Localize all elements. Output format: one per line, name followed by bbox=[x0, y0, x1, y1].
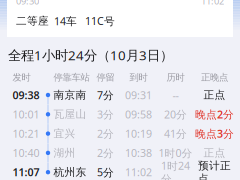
staticText: 正点 bbox=[203, 88, 225, 101]
staticText: 正晚点 bbox=[201, 72, 228, 83]
staticText: 20分 bbox=[164, 107, 187, 121]
staticText: 1时0分 bbox=[158, 146, 192, 160]
staticText: 预计正点 bbox=[198, 159, 231, 180]
staticText: 发时 bbox=[12, 72, 30, 83]
staticText: 杭州东 bbox=[53, 166, 86, 179]
staticText: 停留 bbox=[96, 72, 114, 83]
staticText: 14车 bbox=[54, 14, 77, 28]
staticText: 10:21 bbox=[12, 126, 39, 141]
staticText: 到时 bbox=[129, 72, 147, 83]
staticText: 2分 bbox=[97, 146, 114, 160]
staticText: 10:01 bbox=[12, 107, 39, 121]
staticText: -- bbox=[172, 88, 178, 102]
staticText: 11C号 bbox=[85, 14, 115, 28]
staticText: 晚点2分 bbox=[195, 107, 234, 121]
staticText: 11:02 bbox=[125, 165, 152, 179]
staticText: 3分 bbox=[97, 107, 114, 121]
staticText: 停靠车站 bbox=[53, 72, 89, 83]
staticText: 南京南 bbox=[53, 88, 86, 101]
staticText: 瓦屋山 bbox=[53, 108, 86, 121]
staticText: 湖州 bbox=[53, 146, 75, 159]
staticText: 09:30 bbox=[16, 0, 39, 7]
staticText: 宜兴 bbox=[53, 127, 75, 140]
staticText: 1时24分 bbox=[161, 159, 190, 180]
staticText: 11:02 bbox=[201, 0, 224, 7]
staticText: 晚点3分 bbox=[195, 126, 234, 141]
staticText: 5分 bbox=[97, 165, 114, 179]
staticText: 2分 bbox=[97, 126, 114, 141]
staticText: 10:38 bbox=[125, 146, 152, 160]
staticText: 正点 bbox=[203, 146, 225, 159]
staticText: 09:38 bbox=[12, 88, 39, 102]
staticText: 09:58 bbox=[125, 107, 152, 121]
staticText: 全程1小时24分（10月3日） bbox=[8, 46, 173, 64]
staticText: 10:40 bbox=[12, 146, 39, 160]
staticText: 7分 bbox=[97, 88, 114, 102]
staticText: 41分 bbox=[164, 126, 187, 141]
staticText: 10:19 bbox=[125, 126, 152, 141]
staticText: 二等座 bbox=[16, 14, 49, 27]
staticText: 历时 bbox=[166, 72, 184, 83]
staticText: 11:07 bbox=[12, 165, 39, 179]
staticText: 09:31 bbox=[125, 88, 152, 102]
